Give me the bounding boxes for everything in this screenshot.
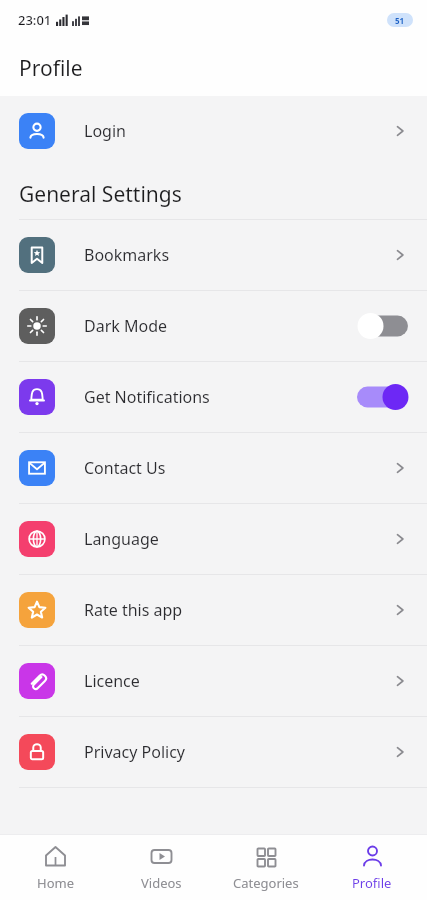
staticText: Dark Mode [84,315,168,337]
button[interactable]: Profile [322,835,422,900]
button[interactable]: Contact Us [0,433,427,503]
button[interactable]: Get Notifications [0,362,427,432]
staticText: Rate this app [84,599,183,621]
staticText: Bookmarks [84,244,170,266]
button[interactable]: Login [0,96,427,166]
staticText: Categories [233,874,299,892]
staticText: Get Notifications [84,386,210,408]
staticText: Language [84,528,159,550]
button[interactable]: Categories [216,835,316,900]
staticText: Videos [141,874,182,892]
button[interactable]: Videos [111,835,211,900]
button[interactable]: Privacy Policy [0,717,427,787]
staticText: Contact Us [84,457,166,479]
button[interactable]: Language [0,504,427,574]
staticText: Login [84,120,126,142]
staticText: 23:01 [18,11,52,29]
staticText: Profile [352,874,392,892]
button[interactable]: Licence [0,646,427,716]
staticText: 51 [395,15,405,26]
staticText: Licence [84,670,140,692]
button[interactable]: Rate this app [0,575,427,645]
staticText: General Settings [19,180,182,209]
button[interactable]: Bookmarks [0,220,427,290]
staticText: Privacy Policy [84,741,185,763]
button[interactable]: Home [5,835,105,900]
staticText: Profile [19,54,83,83]
button[interactable]: Dark Mode [0,291,427,361]
staticText: Home [37,874,74,892]
